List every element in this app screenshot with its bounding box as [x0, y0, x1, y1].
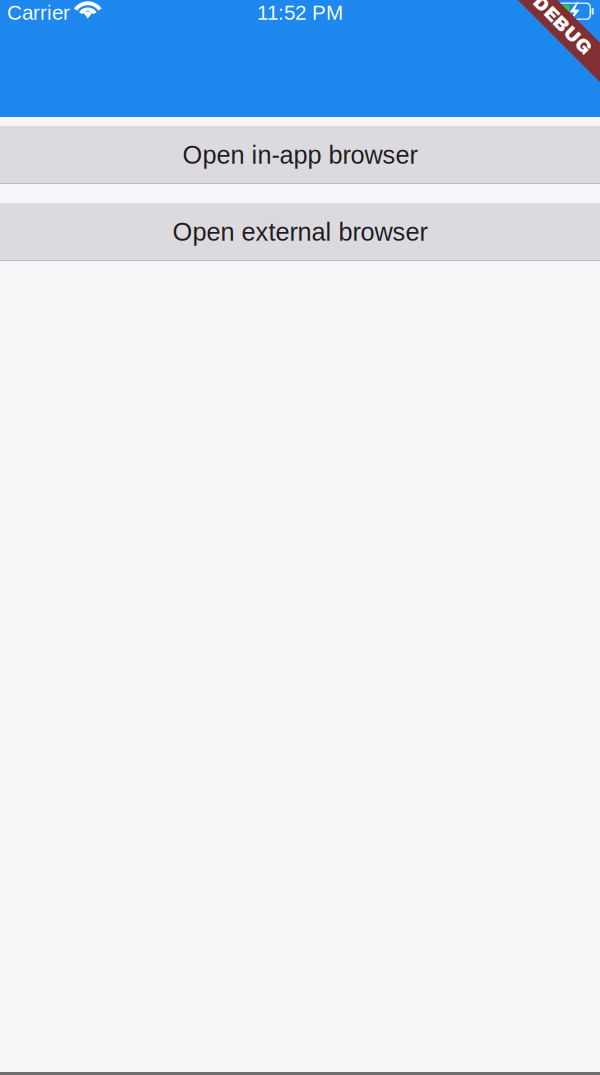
staticText: Carrier [7, 1, 70, 24]
button[interactable]: Open in-app browser [0, 126, 600, 184]
staticText: Open in-app browser [182, 141, 417, 169]
button[interactable]: Open external browser [0, 203, 600, 261]
staticText: Open external browser [172, 218, 427, 246]
staticText: DEBUG [523, 21, 598, 41]
staticText: 11:52 PM [257, 1, 343, 24]
